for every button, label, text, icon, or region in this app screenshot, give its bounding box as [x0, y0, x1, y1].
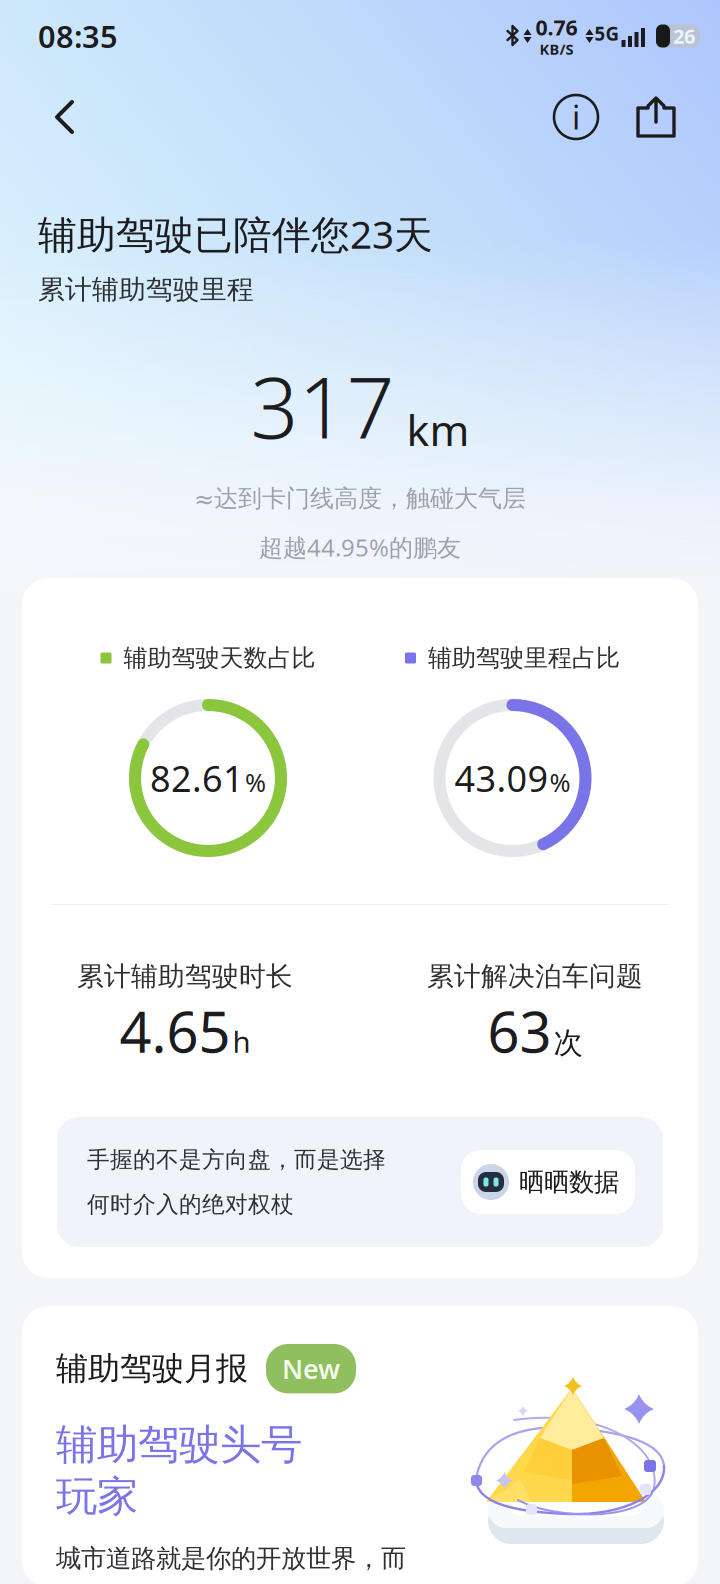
button[interactable]: Share: [604, 89, 684, 145]
staticText: 43.09: [454, 754, 548, 802]
staticText: 辅助驾驶天数占比: [123, 643, 315, 673]
staticText: 4.65: [119, 994, 230, 1068]
button[interactable]: 晒晒数据: [461, 1150, 635, 1214]
staticText: h: [232, 1022, 250, 1061]
staticText: 玩家: [56, 1471, 138, 1522]
staticText: KB/S: [539, 39, 573, 59]
staticText: 82.61: [150, 754, 244, 802]
staticText: 何时介入的绝对权杖: [87, 1190, 294, 1218]
staticText: 累计解决泊车问题: [427, 960, 643, 993]
staticText: 城市道路就是你的开放世界，而: [56, 1543, 406, 1574]
staticText: %: [549, 765, 570, 799]
staticText: %: [245, 765, 266, 799]
staticText: km: [406, 401, 469, 458]
staticText: 次: [553, 1025, 582, 1061]
staticText: 5G: [594, 21, 619, 46]
staticText: 辅助驾驶已陪伴您23天: [38, 208, 433, 259]
staticText: i: [572, 96, 580, 138]
button[interactable]: Info: [548, 89, 604, 145]
staticText: 08:35: [38, 16, 118, 56]
staticText: 26: [673, 23, 695, 49]
staticText: 超越44.95%的鹏友: [259, 531, 461, 563]
staticText: 辅助驾驶里程占比: [428, 643, 620, 673]
staticText: 317: [250, 350, 394, 462]
button[interactable]: Back: [36, 84, 94, 150]
staticText: New: [282, 1351, 340, 1386]
staticText: 晒晒数据: [519, 1166, 619, 1197]
staticText: ≈达到卡门线高度，触碰大气层: [194, 484, 526, 513]
staticText: 辅助驾驶头号: [56, 1419, 302, 1470]
staticText: 手握的不是方向盘，而是选择: [87, 1146, 386, 1173]
staticText: 辅助驾驶月报: [56, 1349, 248, 1388]
staticText: 63: [487, 994, 551, 1068]
staticText: 累计辅助驾驶里程: [38, 273, 254, 306]
staticText: 0.76: [535, 13, 577, 41]
staticText: 累计辅助驾驶时长: [77, 960, 293, 993]
